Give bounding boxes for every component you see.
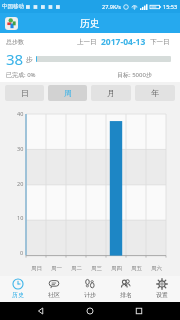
staticText: 历史 [12, 291, 24, 299]
button[interactable]: 历史 [0, 276, 36, 302]
button[interactable]: 日 [5, 85, 44, 101]
staticText: 30 [17, 145, 24, 152]
staticText: 下一日 [150, 38, 170, 46]
staticText: 上一日 [77, 38, 97, 46]
staticText: 周一 [51, 265, 62, 272]
staticText: 月 [107, 88, 115, 98]
staticText: 15:53 [163, 3, 178, 10]
staticText: 周六 [151, 265, 162, 272]
button[interactable]: 计步 [72, 276, 108, 302]
staticText: 38 [6, 49, 24, 69]
staticText: 目标: 5000步 [117, 71, 152, 79]
staticText: 周 [64, 88, 72, 98]
button[interactable]: Back [33, 303, 49, 319]
button[interactable]: App icon [5, 17, 18, 30]
button[interactable]: 下一日 [148, 37, 172, 47]
staticText: 年 [151, 88, 159, 98]
button[interactable]: 上一日 [75, 37, 99, 47]
staticText: 历史 [80, 17, 100, 30]
button[interactable]: Recent apps [131, 303, 147, 319]
staticText: 40 [17, 110, 24, 117]
staticText: 社区 [48, 291, 60, 299]
staticText: 日 [21, 88, 29, 98]
staticText: 20 [17, 180, 24, 187]
button[interactable]: 周 [48, 85, 87, 101]
staticText: 27.9K/s [102, 3, 121, 10]
staticText: 计步 [84, 291, 96, 299]
staticText: 中国移动 [2, 3, 24, 10]
staticText: 周二 [71, 265, 82, 272]
button[interactable]: 设置 [144, 276, 180, 302]
staticText: 总步数 [6, 38, 24, 46]
button[interactable]: 社区 [36, 276, 72, 302]
staticText: 步 [26, 55, 33, 64]
staticText: 周五 [131, 265, 142, 272]
button[interactable]: 月 [91, 85, 131, 101]
button[interactable]: 年 [135, 85, 175, 101]
staticText: 10 [17, 214, 24, 221]
staticText: 排名 [120, 291, 132, 299]
staticText: 周四 [111, 265, 122, 272]
button[interactable]: Home [82, 303, 98, 319]
staticText: 已完成: 0% [6, 71, 36, 79]
staticText: 0 [20, 249, 24, 256]
staticText: 周日 [31, 265, 42, 272]
staticText: 周三 [91, 265, 102, 272]
button[interactable]: 排名 [108, 276, 144, 302]
staticText: 设置 [156, 291, 168, 299]
staticText: 2017-04-13 [101, 36, 146, 48]
